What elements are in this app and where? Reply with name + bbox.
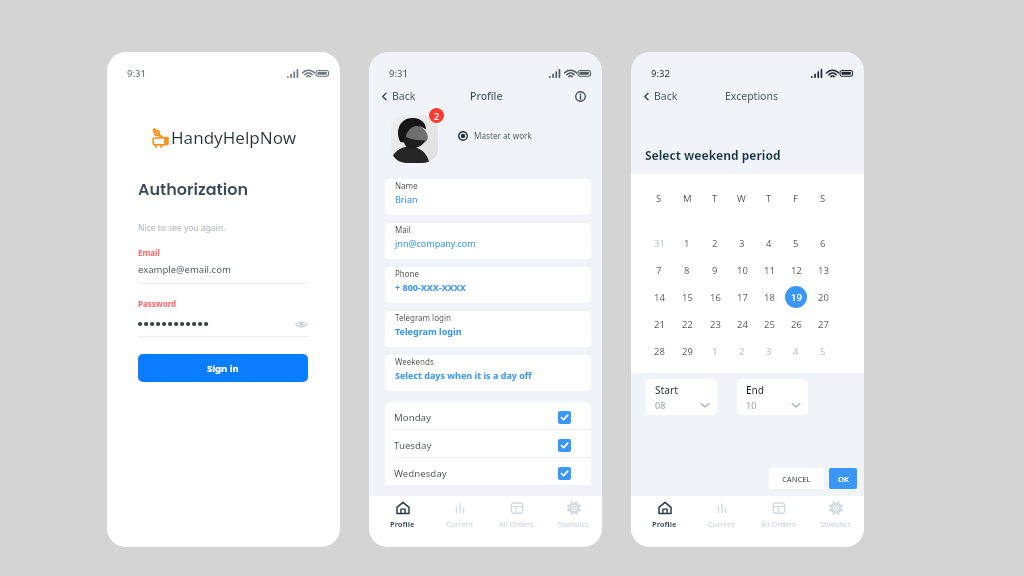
- button[interactable]: 28: [648, 340, 670, 362]
- button[interactable]: All Orders: [750, 496, 807, 547]
- staticText: 8: [684, 264, 690, 277]
- staticText: 20: [818, 291, 829, 304]
- staticText: 1: [712, 345, 718, 358]
- staticText: 12: [791, 264, 802, 277]
- button[interactable]: Statistics: [807, 496, 864, 547]
- button[interactable]: Tuesday: [385, 430, 591, 457]
- button[interactable]: Master at work: [458, 130, 532, 141]
- staticText: 2: [712, 237, 718, 250]
- button[interactable]: 24: [731, 313, 753, 335]
- button[interactable]: 26: [785, 313, 807, 335]
- button[interactable]: 5: [812, 340, 834, 362]
- staticText: W: [737, 192, 746, 205]
- staticText: M: [683, 192, 692, 205]
- staticText: 16: [710, 291, 721, 304]
- button[interactable]: 5: [785, 232, 807, 254]
- button[interactable]: 16: [704, 286, 726, 308]
- button[interactable]: Profile: [374, 496, 431, 547]
- button[interactable]: Wednesday: [385, 458, 591, 485]
- staticText: T: [766, 192, 772, 205]
- button[interactable]: Show password: [295, 318, 308, 331]
- staticText: 25: [764, 318, 775, 331]
- button[interactable]: 4: [758, 232, 780, 254]
- button[interactable]: 19: [785, 286, 807, 308]
- staticText: 5: [820, 345, 826, 358]
- staticText: Sign in: [207, 362, 239, 375]
- button[interactable]: 3: [731, 232, 753, 254]
- button[interactable]: CANCEL: [769, 468, 824, 489]
- button[interactable]: 3: [758, 340, 780, 362]
- button[interactable]: Current: [693, 496, 750, 547]
- staticText: Telegram login: [395, 325, 462, 337]
- button[interactable]: 2: [704, 232, 726, 254]
- button[interactable]: 11: [758, 259, 780, 281]
- staticText: 9:31: [389, 67, 408, 80]
- staticText: Brian: [395, 193, 418, 205]
- button[interactable]: 21: [648, 313, 670, 335]
- button[interactable]: Current: [431, 496, 488, 547]
- button[interactable]: End: [737, 379, 808, 415]
- staticText: Password: [138, 298, 177, 309]
- button[interactable]: Phone: [385, 267, 591, 303]
- button[interactable]: 9: [704, 259, 726, 281]
- staticText: Telegram login: [395, 312, 451, 323]
- staticText: Tuesday: [394, 439, 432, 452]
- button[interactable]: Info: [575, 91, 586, 102]
- staticText: Nice to see you again.: [138, 222, 226, 234]
- staticText: Profile: [390, 519, 415, 529]
- button[interactable]: Telegram login: [385, 311, 591, 347]
- button[interactable]: Weekends: [385, 355, 591, 391]
- button[interactable]: 13: [812, 259, 834, 281]
- staticText: 28: [654, 345, 665, 358]
- button[interactable]: 31: [648, 232, 670, 254]
- staticText: 3: [766, 345, 772, 358]
- button[interactable]: 23: [704, 313, 726, 335]
- button[interactable]: 12: [785, 259, 807, 281]
- button[interactable]: 20: [812, 286, 834, 308]
- staticText: 9:31: [127, 67, 146, 80]
- staticText: HandyHelpNow: [171, 126, 297, 149]
- button[interactable]: 2: [731, 340, 753, 362]
- button[interactable]: OK: [829, 468, 857, 489]
- button[interactable]: 14: [648, 286, 670, 308]
- staticText: + 800-XXX-XXXX: [395, 281, 466, 293]
- button[interactable]: 22: [676, 313, 698, 335]
- staticText: jnn@company.com: [395, 237, 476, 249]
- button[interactable]: 29: [676, 340, 698, 362]
- button[interactable]: Name: [385, 179, 591, 215]
- staticText: 26: [791, 318, 802, 331]
- button[interactable]: Start: [646, 379, 717, 415]
- button[interactable]: 27: [812, 313, 834, 335]
- button[interactable]: All Orders: [488, 496, 545, 547]
- button[interactable]: 8: [676, 259, 698, 281]
- staticText: 15: [682, 291, 693, 304]
- staticText: Wednesday: [394, 467, 447, 480]
- button[interactable]: 17: [731, 286, 753, 308]
- button[interactable]: Sign in: [138, 354, 308, 382]
- button[interactable]: 1: [676, 232, 698, 254]
- button[interactable]: 1: [704, 340, 726, 362]
- staticText: 3: [739, 237, 745, 250]
- staticText: 9:32: [651, 67, 670, 80]
- staticText: 10: [746, 399, 757, 411]
- staticText: 08: [655, 399, 666, 411]
- button[interactable]: 15: [676, 286, 698, 308]
- button[interactable]: 25: [758, 313, 780, 335]
- button[interactable]: 10: [731, 259, 753, 281]
- button[interactable]: Monday: [385, 402, 591, 429]
- button[interactable]: 7: [648, 259, 670, 281]
- button[interactable]: Profile: [636, 496, 693, 547]
- staticText: 14: [654, 291, 665, 304]
- staticText: All Orders: [499, 519, 534, 529]
- staticText: 13: [818, 264, 829, 277]
- staticText: Back: [392, 89, 416, 103]
- button[interactable]: Statistics: [545, 496, 602, 547]
- staticText: 19: [791, 291, 802, 304]
- button[interactable]: Back: [631, 87, 684, 105]
- button[interactable]: 4: [785, 340, 807, 362]
- staticText: OK: [838, 474, 849, 484]
- button[interactable]: 6: [812, 232, 834, 254]
- button[interactable]: Mail: [385, 223, 591, 259]
- button[interactable]: Back: [369, 87, 422, 105]
- button[interactable]: 18: [758, 286, 780, 308]
